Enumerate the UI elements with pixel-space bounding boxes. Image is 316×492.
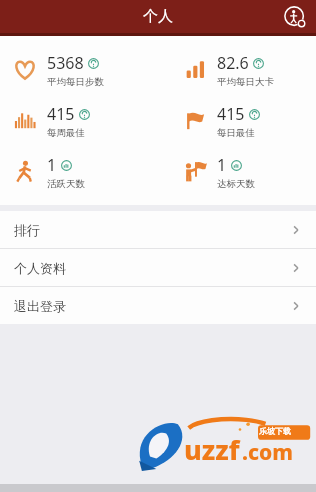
staticText: 平均每日步数 [47, 76, 104, 88]
button[interactable]: 退出登录 [0, 287, 316, 324]
staticText: 1 [47, 154, 57, 176]
button[interactable]: 1 [180, 146, 316, 197]
button[interactable]: 415 [10, 95, 158, 146]
staticText: 乐坡下载 [259, 426, 291, 436]
staticText: 1 [217, 154, 227, 176]
staticText: uzzf [184, 431, 240, 468]
staticText: 个人 [143, 7, 173, 26]
button[interactable]: 排行 [0, 211, 316, 248]
staticText: 每日最佳 [217, 127, 255, 139]
button[interactable]: 个人资料 [0, 249, 316, 286]
staticText: 82.6 [217, 52, 249, 74]
staticText: 个人资料 [14, 260, 66, 276]
button[interactable]: 82.6 [180, 44, 316, 95]
staticText: 5368 [47, 52, 84, 74]
staticText: .com [242, 438, 293, 467]
staticText: 活跃天数 [47, 178, 85, 190]
button[interactable]: 415 [180, 95, 316, 146]
staticText: 平均每日大卡 [217, 76, 274, 88]
staticText: 排行 [14, 222, 40, 238]
button[interactable]: 1 [10, 146, 158, 197]
staticText: 达标天数 [217, 178, 255, 190]
staticText: 415 [217, 103, 245, 125]
button[interactable]: 5368 [10, 44, 158, 95]
staticText: 退出登录 [14, 298, 66, 314]
button[interactable]: Profile settings [280, 2, 310, 32]
staticText: 每周最佳 [47, 127, 85, 139]
staticText: 415 [47, 103, 75, 125]
